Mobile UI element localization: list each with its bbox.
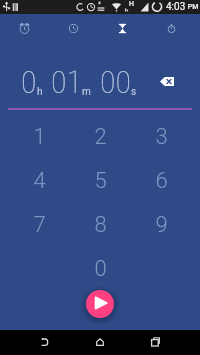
staticText: m xyxy=(82,86,91,98)
button[interactable]: Timer xyxy=(98,14,147,42)
staticText: 6 xyxy=(155,168,168,194)
staticText: PM xyxy=(186,3,199,11)
button[interactable]: Home xyxy=(72,329,128,354)
staticText: 8 xyxy=(94,212,107,238)
button[interactable]: 3 xyxy=(131,115,192,159)
button[interactable]: 8 xyxy=(70,203,131,247)
staticText: 7 xyxy=(33,212,46,238)
button[interactable]: 4 xyxy=(8,159,70,203)
staticText: 2 xyxy=(94,124,107,150)
button[interactable]: Alarms xyxy=(0,14,49,42)
button[interactable]: 7 xyxy=(8,203,70,247)
staticText: s xyxy=(131,86,137,98)
staticText: 0 xyxy=(21,63,37,101)
staticText: 5 xyxy=(94,168,107,194)
button[interactable]: Delete xyxy=(154,71,180,91)
staticText: h xyxy=(37,86,43,98)
button[interactable]: 5 xyxy=(70,159,131,203)
staticText: 4 xyxy=(33,168,46,194)
staticText: 01 xyxy=(51,63,82,101)
staticText: 3 xyxy=(155,124,168,150)
button[interactable]: 0 xyxy=(70,247,131,291)
staticText: 1 xyxy=(33,124,46,150)
staticText: 4:03 xyxy=(166,1,186,13)
button[interactable]: 1 xyxy=(8,115,70,159)
button[interactable]: Stopwatch xyxy=(147,14,196,42)
button[interactable]: 2 xyxy=(70,115,131,159)
button[interactable]: Clock xyxy=(49,14,98,42)
staticText: H xyxy=(129,0,134,8)
button[interactable]: Recent apps xyxy=(128,329,184,354)
staticText: 00 xyxy=(100,63,131,101)
button[interactable]: Start timer xyxy=(86,290,114,318)
staticText: 0 xyxy=(94,256,107,282)
staticText: 9 xyxy=(155,212,168,238)
button[interactable]: 9 xyxy=(131,203,192,247)
button[interactable]: Back xyxy=(16,329,72,354)
button[interactable]: 6 xyxy=(131,159,192,203)
